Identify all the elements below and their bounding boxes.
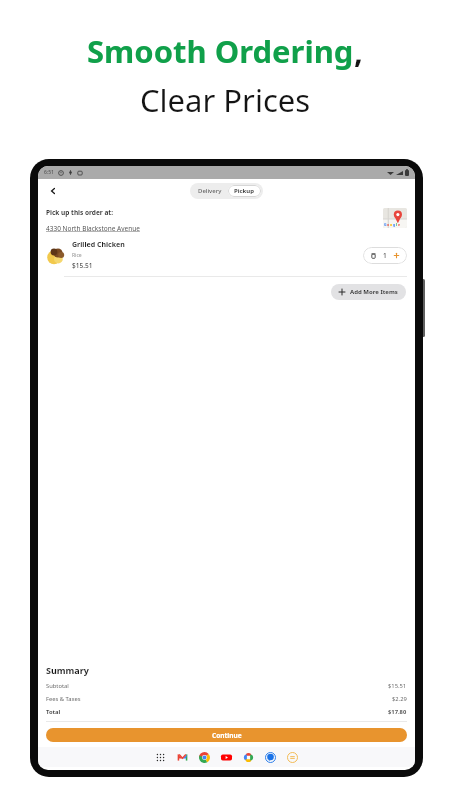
staticText: Continue <box>212 731 242 740</box>
button[interactable]: App <box>287 752 298 763</box>
button[interactable]: Pickup <box>228 185 261 197</box>
staticText: , <box>354 30 363 72</box>
staticText: 6:51 <box>44 169 54 176</box>
staticText: Clear Prices <box>140 79 311 121</box>
other: Remove item <box>370 252 377 259</box>
other: Add one <box>393 252 400 259</box>
staticText: e <box>398 222 401 227</box>
button[interactable]: 4330 North Blackstone Avenue <box>46 224 140 233</box>
staticText: $15.51 <box>388 682 407 690</box>
button[interactable]: Map <box>383 208 407 228</box>
staticText: l <box>396 222 398 227</box>
staticText: o <box>387 222 390 227</box>
staticText: Pick up this order at: <box>46 208 113 217</box>
button[interactable]: Add More Items <box>331 284 406 300</box>
button[interactable]: Messages <box>265 752 276 763</box>
button[interactable]: Delivery <box>192 185 228 197</box>
staticText: Smooth Ordering <box>87 30 354 72</box>
staticText: $15.51 <box>72 261 93 270</box>
staticText: Subtotal <box>46 682 69 690</box>
staticText: Delivery <box>198 187 222 195</box>
staticText: Rice <box>72 252 82 259</box>
button[interactable]: Remove item <box>363 247 407 264</box>
staticText: Grilled Chicken <box>72 240 125 250</box>
button[interactable]: Continue <box>46 728 407 742</box>
staticText: $17.80 <box>388 708 407 716</box>
staticText: o <box>390 222 393 227</box>
button[interactable]: YouTube <box>221 752 232 763</box>
staticText: $2.29 <box>392 695 407 703</box>
button[interactable]: Chrome <box>199 752 210 763</box>
staticText: Fees & Taxes <box>46 695 81 703</box>
staticText: Pickup <box>234 187 255 195</box>
button[interactable]: Gmail <box>177 752 188 763</box>
staticText: g <box>393 222 396 227</box>
staticText: Total <box>46 708 61 716</box>
staticText: Summary <box>46 664 89 676</box>
staticText: G <box>384 222 387 227</box>
button[interactable]: Photos <box>243 752 254 763</box>
staticText: 1 <box>383 251 387 260</box>
button[interactable]: Back <box>44 182 62 200</box>
button[interactable]: All apps <box>155 752 166 763</box>
staticText: Add More Items <box>350 288 398 296</box>
